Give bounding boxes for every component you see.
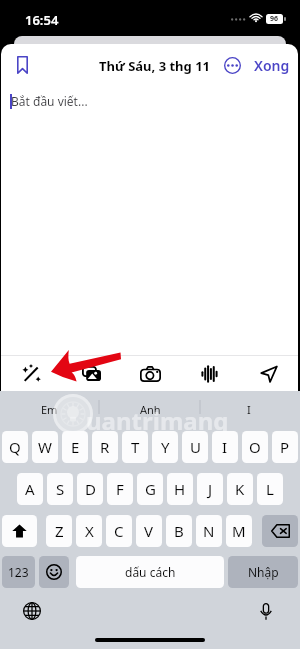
button[interactable]: Camera (121, 356, 180, 391)
staticText: I (247, 402, 251, 417)
button[interactable]: H (167, 473, 193, 505)
staticText: M (232, 521, 246, 541)
button[interactable]: Markup (1, 356, 61, 391)
staticText: P (280, 437, 290, 457)
staticText: dấu cách (125, 564, 176, 580)
button[interactable]: W (32, 431, 58, 463)
button[interactable]: Nhập (228, 556, 298, 588)
staticText: V (144, 521, 154, 541)
staticText: B (174, 521, 184, 541)
button[interactable]: Bookmark (6, 49, 38, 81)
button[interactable]: T (122, 431, 148, 463)
staticText: Nhập (248, 564, 279, 580)
staticText: N (203, 521, 215, 541)
staticText: H (174, 479, 186, 499)
button[interactable]: E (62, 431, 88, 463)
button[interactable]: I (216, 391, 282, 428)
staticText: L (266, 479, 274, 499)
staticText: uantrimang (86, 404, 229, 437)
button[interactable]: More options (216, 49, 248, 81)
button[interactable]: N (196, 515, 222, 547)
staticText: Em (41, 402, 58, 417)
staticText: Xong (254, 56, 290, 75)
button[interactable]: Z (46, 515, 72, 547)
staticText: Anh (140, 402, 161, 417)
staticText: Y (161, 437, 170, 457)
button[interactable]: Q (2, 431, 28, 463)
staticText: K (235, 479, 245, 499)
button[interactable]: C (106, 515, 132, 547)
button[interactable]: S (47, 473, 73, 505)
button[interactable]: Y (152, 431, 178, 463)
button[interactable]: Shift (2, 515, 37, 547)
button[interactable]: Change keyboard (18, 597, 46, 625)
button[interactable]: Dictation (252, 597, 280, 625)
staticText: J (208, 479, 213, 499)
button[interactable]: Send (239, 356, 298, 391)
button[interactable]: Audio (180, 356, 239, 391)
button[interactable]: dấu cách (76, 556, 224, 588)
button[interactable]: I (212, 431, 238, 463)
button[interactable]: F (107, 473, 133, 505)
staticText: Z (55, 521, 64, 541)
button[interactable]: A (17, 473, 43, 505)
staticText: A (25, 479, 35, 499)
button[interactable]: J (197, 473, 223, 505)
button[interactable]: D (77, 473, 103, 505)
button[interactable]: Emoji (39, 556, 69, 588)
staticText: Q (9, 437, 21, 457)
staticText: X (85, 521, 94, 541)
button[interactable]: 123 (2, 556, 35, 588)
button[interactable]: K (227, 473, 253, 505)
staticText: C (114, 521, 124, 541)
button[interactable]: V (136, 515, 162, 547)
staticText: F (116, 479, 124, 499)
staticText: R (100, 437, 110, 457)
button[interactable]: B (166, 515, 192, 547)
staticText: W (38, 437, 52, 457)
staticText: S (56, 479, 65, 499)
staticText: 123 (8, 564, 29, 580)
button[interactable]: Photos (61, 356, 121, 391)
button[interactable]: U (182, 431, 208, 463)
staticText: I (222, 437, 228, 457)
staticText: Thứ Sáu, 3 thg 11 (99, 57, 211, 75)
staticText: O (249, 437, 261, 457)
button[interactable]: M (226, 515, 252, 547)
staticText: T (131, 437, 140, 457)
button[interactable]: Xong (251, 49, 293, 81)
button[interactable]: Em (16, 391, 82, 428)
button[interactable]: X (76, 515, 102, 547)
staticText: 96 (270, 14, 279, 24)
button[interactable]: O (242, 431, 268, 463)
button[interactable]: G (137, 473, 163, 505)
button[interactable]: L (257, 473, 283, 505)
staticText: U (190, 437, 201, 457)
staticText: D (85, 479, 96, 499)
staticText: 16:54 (25, 11, 59, 29)
staticText: G (145, 479, 156, 499)
button[interactable]: Backspace (262, 515, 298, 547)
button[interactable]: Anh (117, 391, 183, 428)
button[interactable]: R (92, 431, 118, 463)
staticText: Bắt đầu viết... (11, 93, 88, 109)
button[interactable]: P (272, 431, 298, 463)
staticText: E (71, 437, 80, 457)
